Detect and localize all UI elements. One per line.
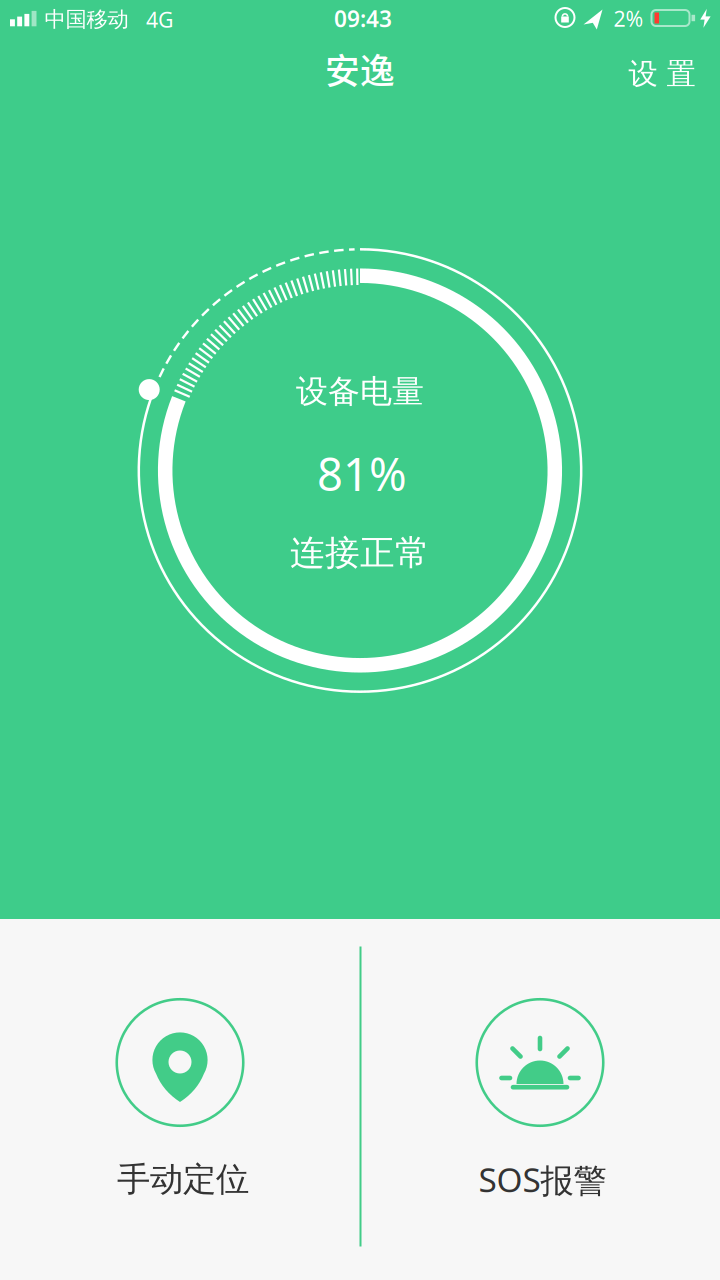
button[interactable]: 设 置	[607, 44, 717, 104]
staticText: 09:43	[334, 3, 392, 33]
staticText: SOS报警	[478, 1157, 606, 1202]
staticText: 2%	[613, 4, 643, 33]
staticText: 81%	[317, 443, 407, 504]
staticText: 中国移动	[44, 6, 128, 33]
staticText: 手动定位	[117, 1159, 249, 1200]
button[interactable]: 手动定位	[0, 919, 356, 1280]
staticText: 安逸	[325, 44, 395, 94]
staticText: 4G	[146, 5, 174, 34]
button[interactable]: SOS报警	[360, 919, 716, 1280]
staticText: 设 置	[628, 56, 695, 92]
staticText: 设备电量	[296, 372, 424, 411]
staticText: 连接正常	[290, 532, 430, 574]
